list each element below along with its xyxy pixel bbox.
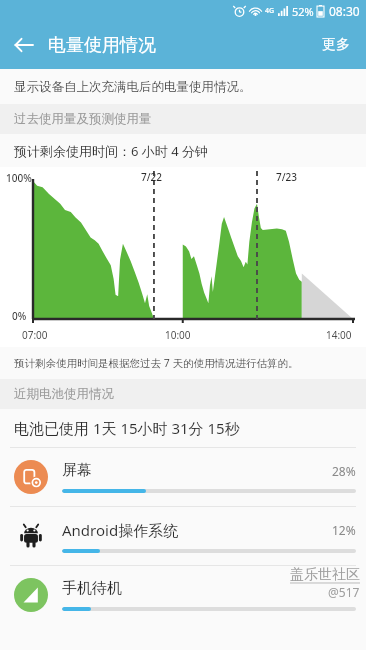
- staticText: 过去使用量及预测使用量: [14, 111, 152, 127]
- staticText: 预计剩余使用时间：6 小时 4 分钟: [14, 142, 209, 160]
- staticText: 电池已使用 1天 15小时 31分 15秒: [14, 418, 240, 438]
- staticText: 08:30: [329, 3, 360, 19]
- button[interactable]: 屏幕: [0, 448, 366, 506]
- staticText: 屏幕: [62, 461, 92, 480]
- staticText: 100%: [6, 171, 32, 185]
- staticText: 52%: [292, 4, 314, 19]
- staticText: 10:00: [165, 328, 191, 342]
- staticText: Android操作系统: [62, 520, 179, 540]
- staticText: 0%: [12, 309, 27, 323]
- staticText: 近期电池使用情况: [14, 386, 114, 402]
- staticText: 手机待机: [62, 579, 122, 598]
- button[interactable]: 手机待机: [0, 566, 366, 624]
- staticText: 盖乐世社区: [290, 566, 360, 584]
- staticText: 4G: [265, 6, 275, 16]
- button[interactable]: Android操作系统: [0, 507, 366, 565]
- staticText: 07:00: [22, 328, 48, 342]
- staticText: 14:00: [326, 328, 352, 342]
- staticText: 7/23: [276, 170, 298, 184]
- button[interactable]: Back: [0, 21, 48, 69]
- staticText: 7/22: [141, 170, 163, 184]
- staticText: 预计剩余使用时间是根据您过去 7 天的使用情况进行估算的。: [14, 356, 299, 370]
- staticText: @517: [328, 584, 360, 600]
- button[interactable]: 更多: [306, 24, 366, 66]
- staticText: 显示设备自上次充满电后的电量使用情况。: [14, 79, 252, 95]
- staticText: 更多: [322, 36, 350, 54]
- staticText: 12%: [332, 522, 356, 538]
- staticText: 28%: [332, 463, 356, 479]
- staticText: 电量使用情况: [48, 34, 156, 57]
